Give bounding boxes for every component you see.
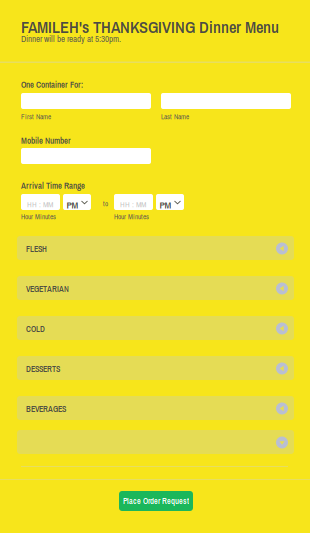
staticText: HH : MM xyxy=(120,199,146,210)
button[interactable]: FLESH xyxy=(17,236,294,260)
staticText: Last Name xyxy=(161,112,189,121)
staticText: Place Order Request xyxy=(123,495,189,506)
button[interactable]: VEGETARIAN xyxy=(17,276,294,300)
staticText: COLD xyxy=(26,323,45,334)
staticText: PM xyxy=(159,198,171,211)
button[interactable]: Place Order Request xyxy=(119,491,193,511)
staticText: to xyxy=(103,199,108,208)
staticText: FAMILEH's THANKSGIVING Dinner Menu xyxy=(21,16,279,38)
staticText: First Name xyxy=(21,112,51,121)
staticText: FLESH xyxy=(26,243,47,254)
button[interactable]: COLD xyxy=(17,316,294,340)
staticText: Arrival Time Range xyxy=(21,180,85,191)
staticText: Hour Minutes xyxy=(114,212,149,221)
staticText: DESSERTS xyxy=(26,363,60,374)
staticText: Hour Minutes xyxy=(21,212,56,221)
button[interactable]: PM xyxy=(156,194,184,210)
staticText: VEGETARIAN xyxy=(26,283,69,294)
button[interactable]: BEVERAGES xyxy=(17,396,294,420)
staticText: HH : MM xyxy=(27,199,53,210)
staticText: One Container For: xyxy=(21,79,83,90)
button[interactable]: DESSERTS xyxy=(17,356,294,380)
button[interactable]: PM xyxy=(63,194,91,210)
staticText: BEVERAGES xyxy=(26,403,66,414)
staticText: Mobile Number xyxy=(21,135,71,146)
staticText: Dinner will be ready at 5:30pm. xyxy=(21,33,121,45)
button[interactable] xyxy=(17,430,294,454)
staticText: PM xyxy=(66,198,78,211)
